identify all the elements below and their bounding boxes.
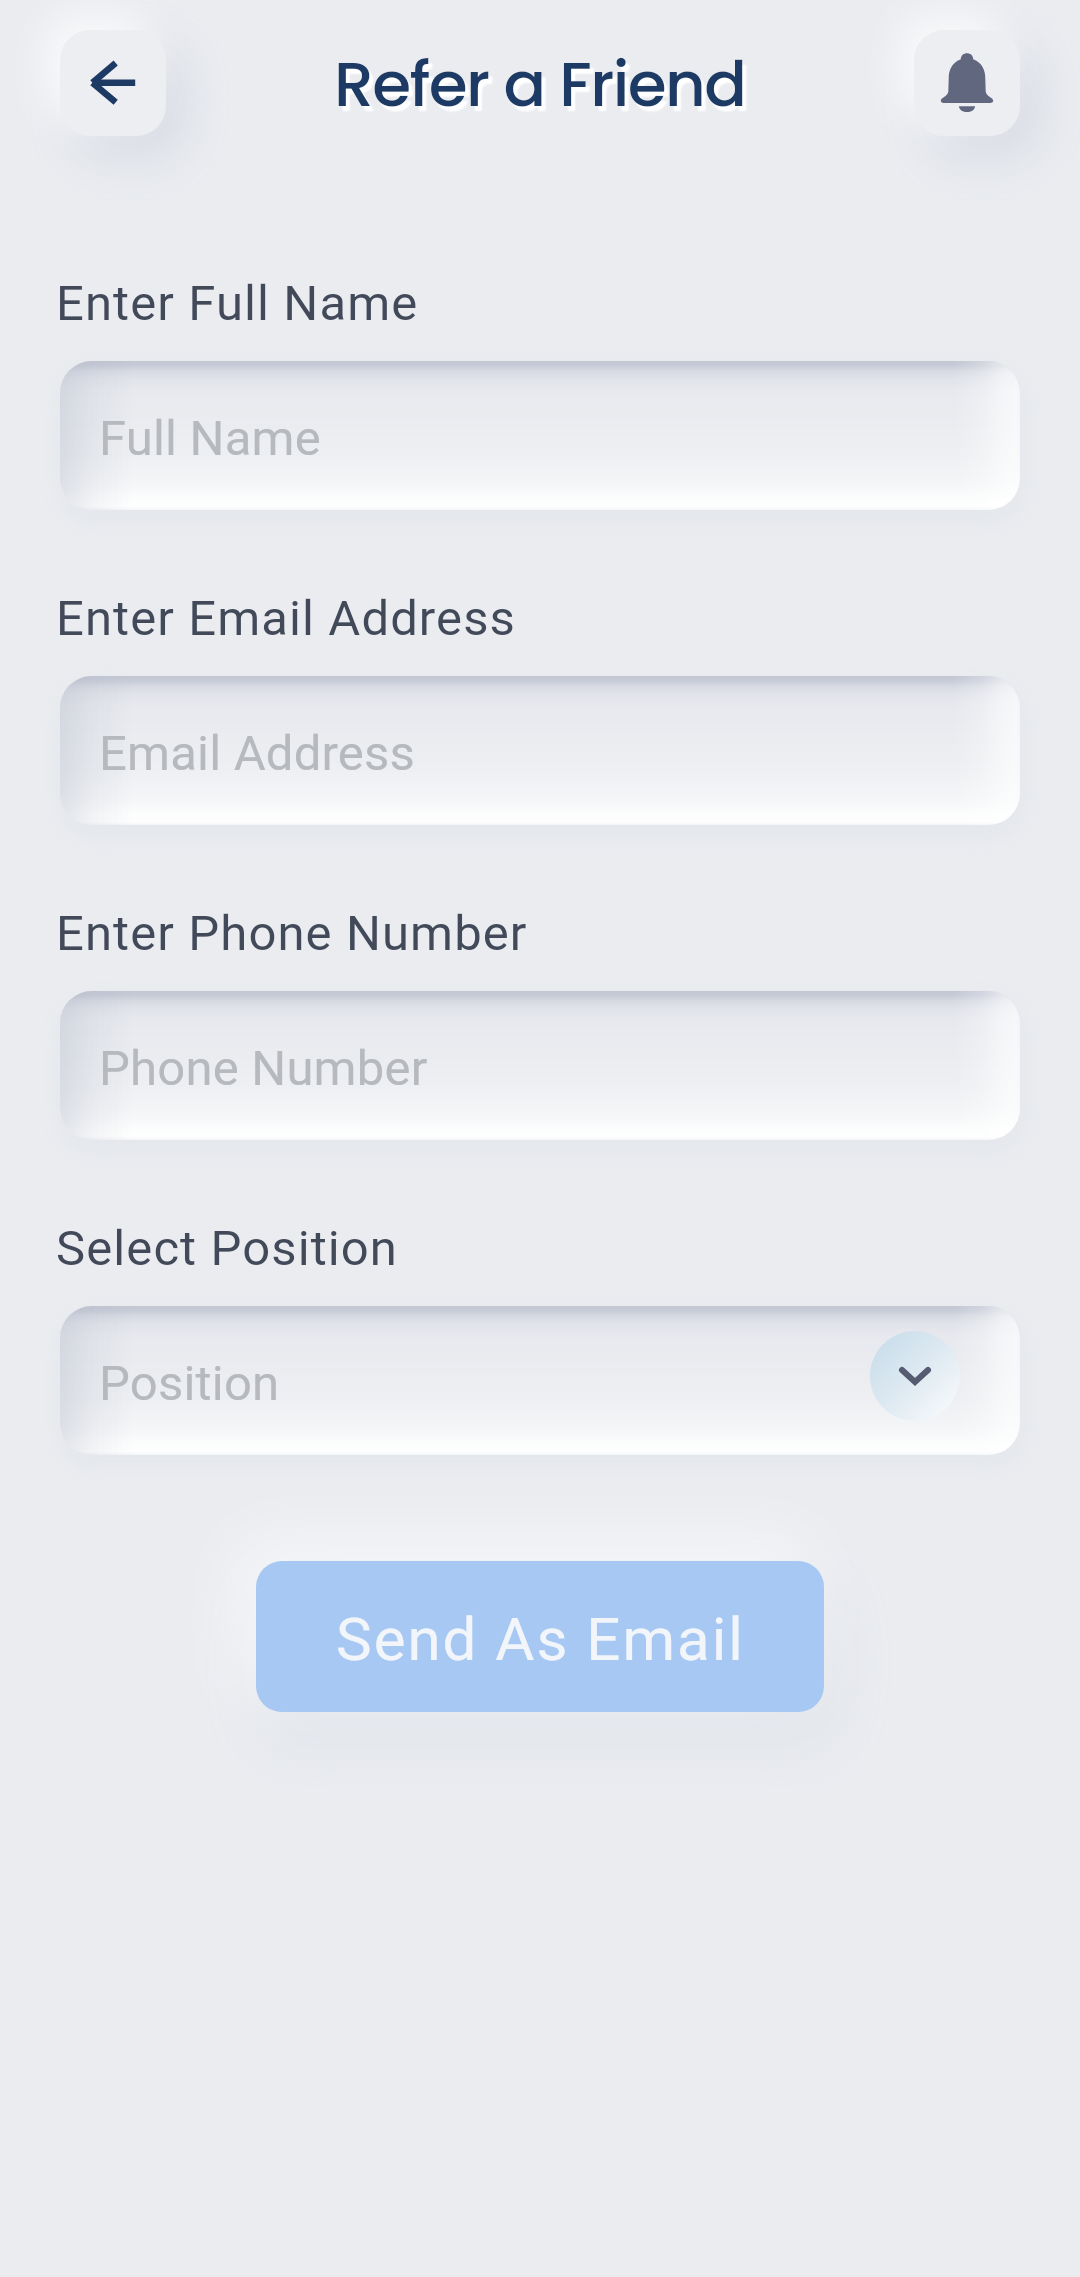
staticText: Send As Email xyxy=(336,1604,745,1674)
staticText: Email Address xyxy=(99,725,416,782)
button[interactable]: Notifications xyxy=(914,30,1020,136)
staticText: Enter Phone Number xyxy=(56,905,528,962)
staticText: Full Name xyxy=(99,410,321,467)
button[interactable]: Email Address xyxy=(60,676,1020,825)
staticText: Enter Email Address xyxy=(56,590,516,647)
button[interactable]: Position xyxy=(60,1306,1020,1455)
button[interactable]: Back xyxy=(60,30,166,136)
staticText: Position xyxy=(99,1355,280,1412)
button[interactable]: Full Name xyxy=(60,361,1020,510)
button[interactable]: Send As Email xyxy=(256,1561,824,1712)
staticText: Refer a Friend xyxy=(334,40,746,128)
staticText: Enter Full Name xyxy=(56,275,419,332)
button[interactable]: Phone Number xyxy=(60,991,1020,1140)
staticText: Phone Number xyxy=(99,1040,428,1097)
staticText: Select Position xyxy=(56,1220,399,1277)
button[interactable]: Open position dropdown xyxy=(870,1331,960,1421)
